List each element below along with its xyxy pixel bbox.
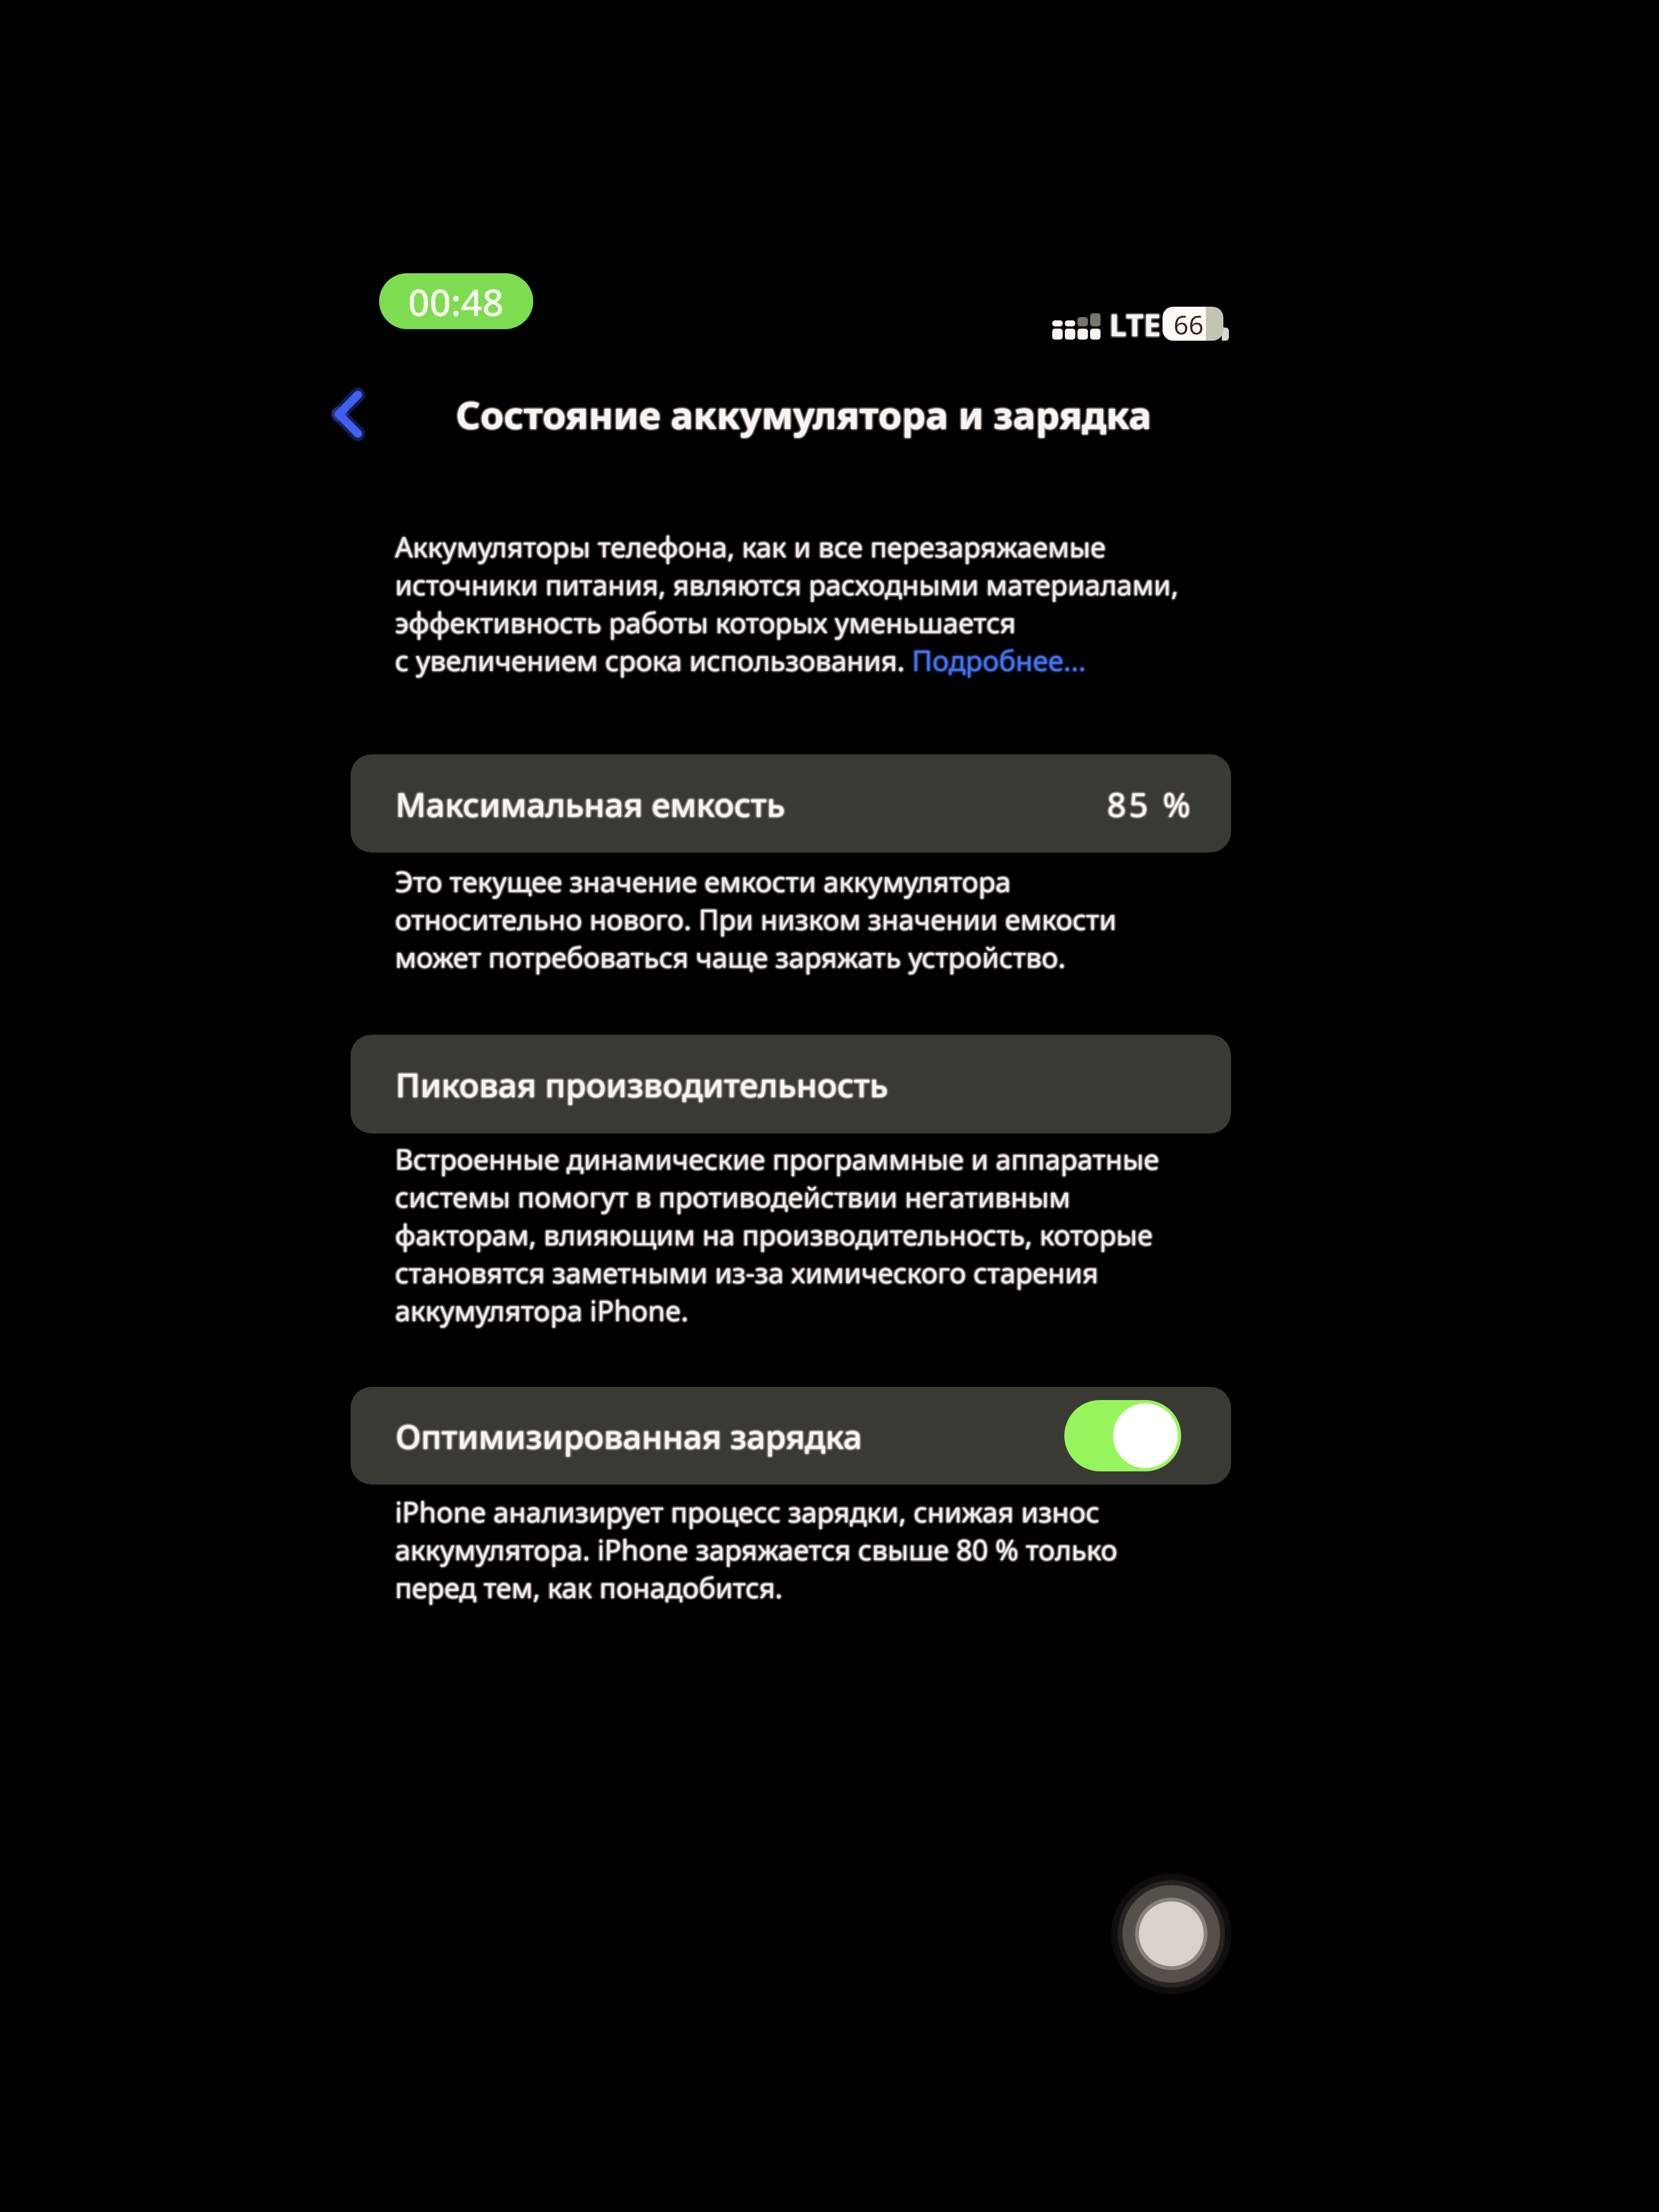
staticText: Аккумуляторы телефона, как и все перезар… [396,527,1107,565]
staticText: системы помогут в противодействии негати… [395,1180,1070,1217]
staticText: аккумулятора. iPhone заряжается свыше 80… [394,1532,1116,1570]
staticText: перед тем, как понадобится. [396,1567,784,1605]
staticText: относительно нового. При низком значении… [395,899,1117,936]
staticText: становятся заметными из-за химического с… [393,1254,1097,1291]
staticText: становятся заметными из-за химического с… [396,1255,1100,1293]
staticText: Это текущее значение емкости аккумулятор… [395,862,1011,900]
staticText: системы помогут в противодействии негати… [395,1178,1070,1216]
staticText: Это текущее значение емкости аккумулятор… [396,861,1012,899]
staticText: LTE [1110,302,1162,344]
staticText: с увеличением срока использования. Подро… [394,640,1085,678]
staticText: эффективность работы которых уменьшается [393,603,1014,641]
staticText: Пиковая производительность [396,1060,888,1105]
staticText: относительно нового. При низком значении… [395,900,1117,938]
staticText: Аккумуляторы телефона, как и все перезар… [393,528,1104,566]
staticText: 85 % [1107,780,1194,825]
staticText: перед тем, как понадобится. [394,1570,782,1607]
staticText: перед тем, как понадобится. [393,1568,781,1606]
staticText: Аккумуляторы телефона, как и все перезар… [395,526,1106,564]
staticText: Максимальная емкость [397,781,787,826]
staticText: перед тем, как понадобится. [395,1567,783,1605]
staticText: становятся заметными из-за химического с… [397,1254,1101,1291]
staticText: 66 [1173,307,1204,341]
staticText: становятся заметными из-за химического с… [395,1252,1099,1290]
staticText: Максимальная емкость [394,781,784,826]
staticText: факторам, влияющим на производительность… [395,1217,1153,1255]
staticText: перед тем, как понадобится. [395,1568,783,1606]
staticText: Встроенные динамические программные и ап… [393,1140,1158,1178]
staticText: с увеличением срока использования. Подро… [394,642,1085,680]
staticText: Встроенные динамические программные и ап… [396,1139,1160,1177]
staticText: Пиковая производительность [394,1060,887,1105]
button[interactable]: Time 00:48 [379,273,533,329]
staticText: Оптимизированная зарядка [397,1412,864,1457]
staticText: Встроенные динамические программные и ап… [395,1138,1159,1176]
staticText: Оптимизированная зарядка [394,1414,861,1459]
staticText: эффективность работы которых уменьшается [394,605,1015,642]
staticText: iPhone анализирует процесс зарядки, сниж… [395,1494,1099,1532]
staticText: системы помогут в противодействии негати… [395,1176,1070,1214]
staticText: аккумулятора. iPhone заряжается свыше 80… [395,1531,1118,1568]
button[interactable]: Back [307,362,390,466]
button[interactable]: Пиковая производительность [351,1035,1231,1133]
staticText: системы помогут в противодействии негати… [394,1177,1069,1215]
staticText: Это текущее значение емкости аккумулятор… [394,864,1010,901]
staticText: аккумулятора iPhone. [395,1291,689,1329]
staticText: Это текущее значение емкости аккумулятор… [397,862,1013,900]
button[interactable]: Максимальная емкость [351,754,1231,853]
staticText: Состояние аккумулятора и зарядка [455,390,1150,441]
staticText: с увеличением срока использования. Подро… [395,641,1086,679]
staticText: 85 % [1106,780,1193,825]
button[interactable]: Optimised charging, on [1064,1400,1181,1471]
staticText: факторам, влияющим на производительность… [394,1215,1152,1252]
staticText: аккумулятора. iPhone заряжается свыше 80… [396,1530,1119,1567]
staticText: системы помогут в противодействии негати… [396,1177,1071,1215]
staticText: Состояние аккумулятора и зарядка [456,388,1152,440]
staticText: относительно нового. При низком значении… [394,899,1116,937]
staticText: Аккумуляторы телефона, как и все перезар… [397,528,1108,566]
staticText: эффективность работы которых уменьшается [395,603,1016,641]
staticText: Оптимизированная зарядка [396,1415,862,1460]
staticText: перед тем, как понадобится. [397,1568,785,1606]
staticText: аккумулятора iPhone. [396,1293,690,1330]
staticText: LTE [1109,302,1161,343]
staticText: может потребоваться чаще заряжать устрой… [395,940,1066,978]
staticText: перед тем, как понадобится. [394,1567,782,1605]
staticText: перед тем, как понадобится. [396,1570,784,1607]
staticText: Оптимизированная зарядка [397,1414,864,1459]
staticText: Аккумуляторы телефона, как и все перезар… [396,529,1107,567]
staticText: аккумулятора iPhone. [395,1293,689,1331]
staticText: эффективность работы которых уменьшается [396,602,1017,640]
staticText: аккумулятора. iPhone заряжается свыше 80… [396,1532,1119,1570]
staticText: Аккумуляторы телефона, как и все перезар… [395,528,1106,566]
staticText: относительно нового. При низком значении… [396,901,1118,939]
staticText: относительно нового. При низком значении… [396,899,1118,937]
staticText: Встроенные динамические программные и ап… [396,1141,1160,1179]
staticText: аккумулятора. iPhone заряжается свыше 80… [393,1531,1116,1568]
staticText: источники питания, являются расходными м… [395,564,1179,602]
staticText: может потребоваться чаще заряжать устрой… [396,939,1067,977]
staticText: 85 % [1105,781,1192,826]
staticText: LTE [1108,302,1160,344]
staticText: iPhone анализирует процесс зарядки, сниж… [395,1493,1099,1531]
staticText: аккумулятора. iPhone заряжается свыше 80… [395,1532,1118,1570]
staticText: становятся заметными из-за химического с… [394,1252,1098,1290]
staticText: Максимальная емкость [394,780,785,825]
staticText: эффективность работы которых уменьшается [395,605,1016,643]
button[interactable]: AssistiveTouch [1106,1869,1237,1999]
staticText: перед тем, как понадобится. [395,1570,783,1608]
staticText: Пиковая производительность [394,1062,887,1107]
staticText: с увеличением срока использования. Подро… [395,643,1086,681]
staticText: может потребоваться чаще заряжать устрой… [394,937,1065,975]
staticText: Максимальная емкость [397,780,787,825]
staticText: факторам, влияющим на производительность… [395,1216,1153,1254]
staticText: становятся заметными из-за химического с… [395,1254,1099,1291]
staticText: Это текущее значение емкости аккумулятор… [393,862,1009,900]
button[interactable]: Оптимизированная зарядка [351,1387,1231,1485]
staticText: LTE [1108,303,1159,345]
staticText: Встроенные динамические программные и ап… [395,1140,1159,1178]
staticText: Пиковая производительность [397,1063,889,1108]
staticText: Аккумуляторы телефона, как и все перезар… [394,527,1105,565]
staticText: факторам, влияющим на производительность… [393,1216,1152,1254]
staticText: с увеличением срока использования. Подро… [397,641,1088,679]
